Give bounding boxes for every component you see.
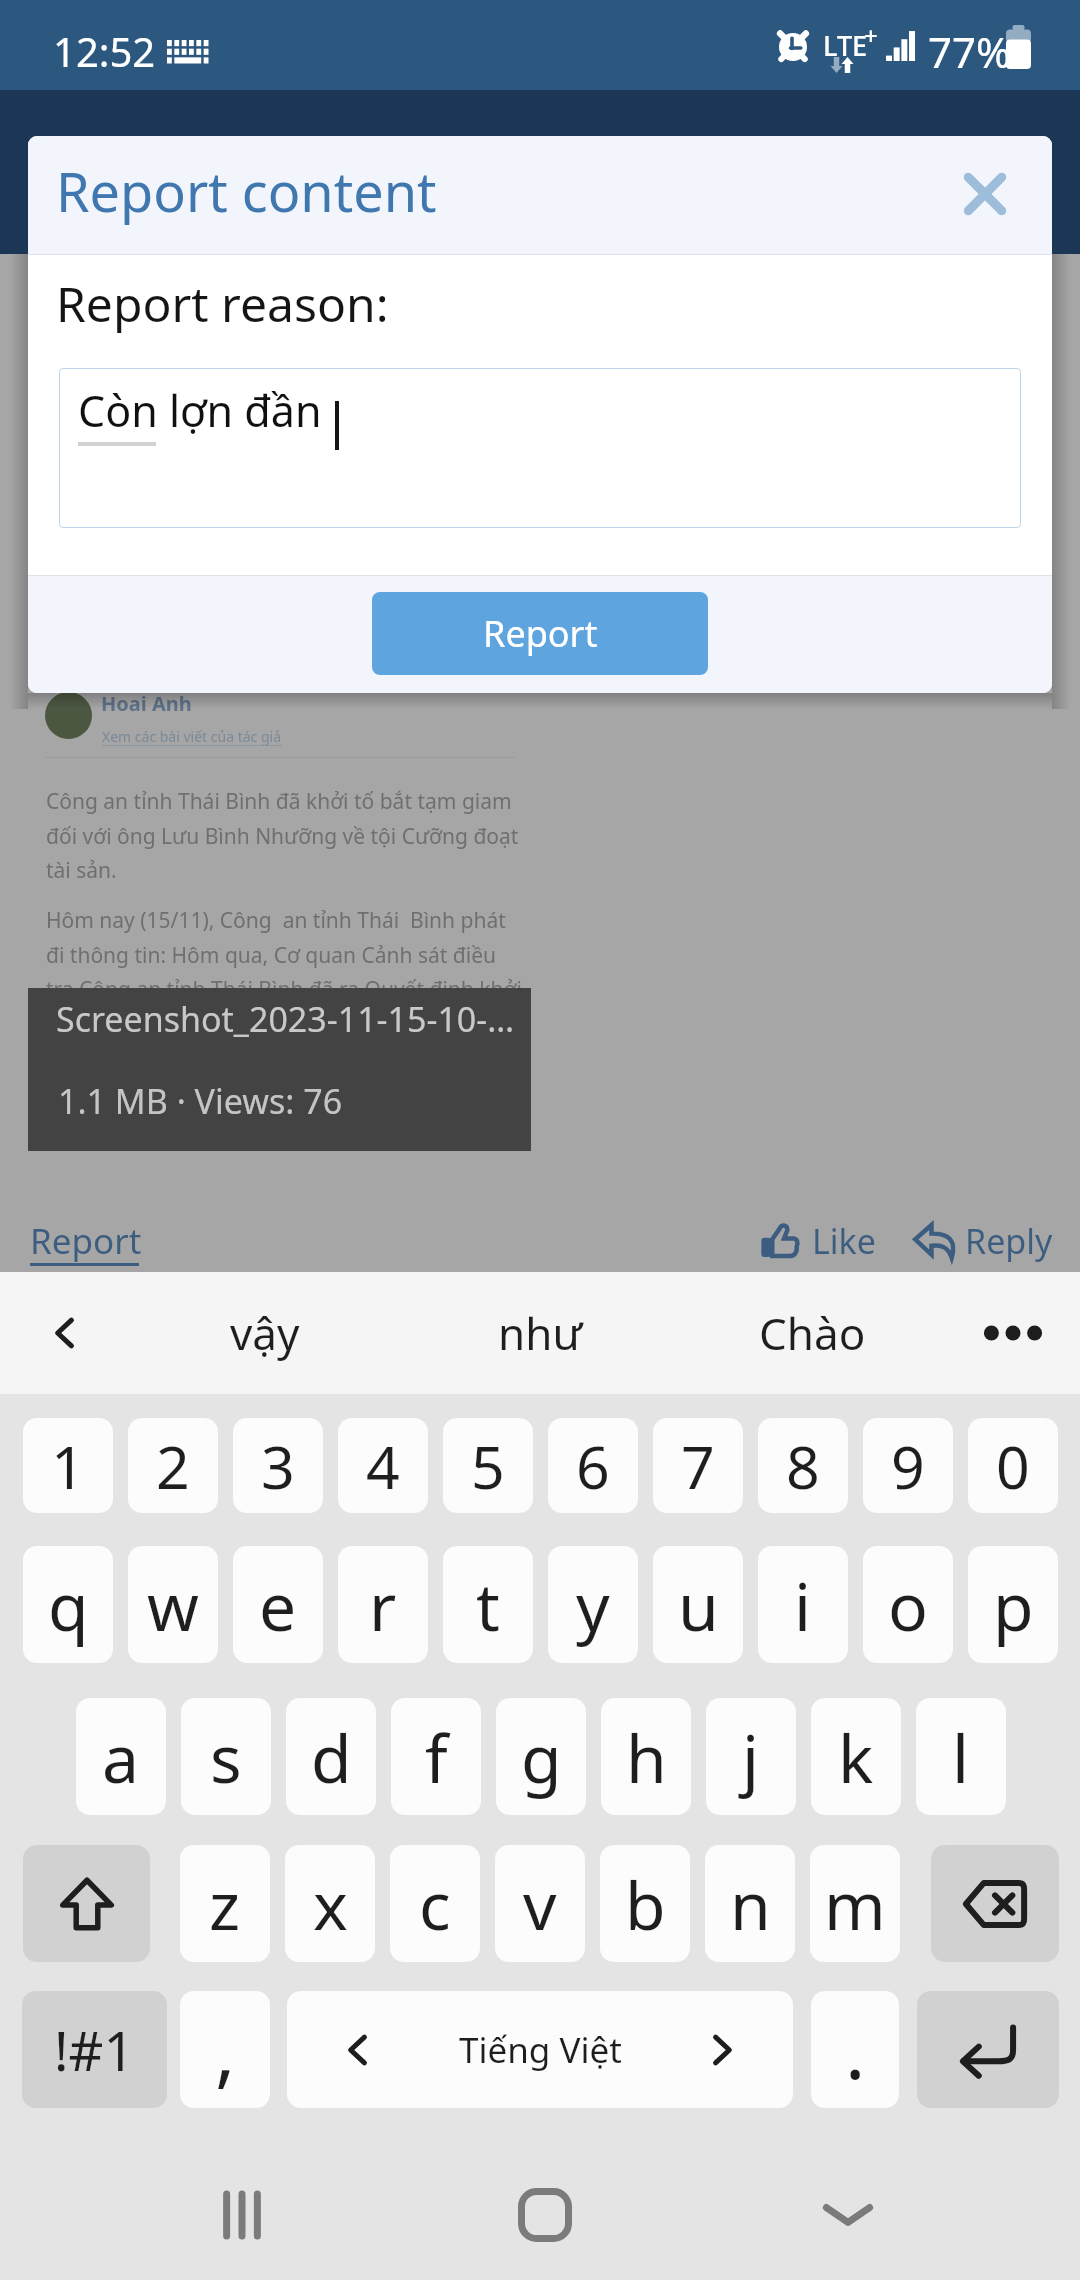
staticText: Hoai Anh <box>101 690 192 717</box>
button[interactable]: 8 <box>758 1418 848 1513</box>
staticText: l <box>952 1712 970 1802</box>
button[interactable]: Hide keyboard <box>728 2150 968 2280</box>
button[interactable]: n <box>705 1845 795 1962</box>
staticText: 12:52 <box>53 24 156 78</box>
button[interactable]: 0 <box>968 1418 1058 1513</box>
staticText: 0 <box>996 1426 1030 1506</box>
button[interactable]: Report <box>30 1217 142 1268</box>
staticText: o <box>888 1560 928 1650</box>
button[interactable]: q <box>23 1546 113 1663</box>
button[interactable]: x <box>285 1845 375 1962</box>
staticText: u <box>678 1560 719 1650</box>
staticText: Reply <box>965 1218 1053 1264</box>
staticText: m <box>824 1859 886 1949</box>
button[interactable]: a <box>76 1698 166 1815</box>
staticText: g <box>521 1712 562 1802</box>
button[interactable]: p <box>968 1546 1058 1663</box>
button[interactable]: Backspace <box>931 1845 1059 1962</box>
button[interactable]: như <box>430 1272 650 1394</box>
staticText: 1 <box>51 1426 85 1506</box>
button[interactable]: 5 <box>443 1418 533 1513</box>
button[interactable]: l <box>916 1698 1006 1815</box>
button[interactable]: e <box>233 1546 323 1663</box>
staticText: Report content <box>56 154 437 228</box>
button[interactable]: 1 <box>23 1418 113 1513</box>
staticText: w <box>147 1560 199 1650</box>
button[interactable]: 7 <box>653 1418 743 1513</box>
staticText: Hôm nay (15/11), Công an tỉnh Thái Bình … <box>46 906 528 1071</box>
button[interactable]: Reply <box>913 1218 1053 1264</box>
staticText: Report reason: <box>56 271 389 336</box>
staticText: h <box>626 1712 667 1802</box>
button[interactable]: y <box>548 1546 638 1663</box>
button[interactable]: Close dialog <box>950 159 1020 229</box>
staticText: e <box>259 1560 297 1650</box>
staticText: !#1 <box>54 2013 135 2087</box>
staticText: 1.1 MB · Views: 76 <box>58 1078 343 1124</box>
staticText: d <box>311 1712 352 1802</box>
button[interactable]: s <box>181 1698 271 1815</box>
button[interactable]: i <box>758 1546 848 1663</box>
staticText: vậy <box>230 1303 300 1363</box>
button[interactable]: z <box>180 1845 270 1962</box>
button[interactable]: Screenshot_2023-11-15-10-… <box>28 988 531 1151</box>
staticText: c <box>419 1859 451 1949</box>
button[interactable]: Like <box>758 1218 876 1264</box>
button[interactable]: vậy <box>155 1272 375 1394</box>
staticText: s <box>210 1712 242 1802</box>
button[interactable]: 2 <box>128 1418 218 1513</box>
staticText: a <box>102 1712 140 1802</box>
button[interactable]: 3 <box>233 1418 323 1513</box>
button[interactable]: b <box>600 1845 690 1962</box>
staticText: Công an tỉnh Thái Bình đã khởi tố bắt tạ… <box>46 787 519 884</box>
button[interactable]: r <box>338 1546 428 1663</box>
staticText: Report <box>483 609 598 658</box>
button[interactable]: Recent apps <box>122 2150 362 2280</box>
button[interactable]: , <box>180 1991 270 2108</box>
button[interactable]: h <box>601 1698 691 1815</box>
button[interactable]: More suggestions <box>978 1298 1048 1368</box>
button[interactable]: g <box>496 1698 586 1815</box>
button[interactable]: f <box>391 1698 481 1815</box>
staticText: k <box>838 1712 874 1802</box>
button[interactable]: w <box>128 1546 218 1663</box>
button[interactable]: v <box>495 1845 585 1962</box>
button[interactable]: c <box>390 1845 480 1962</box>
button[interactable]: t <box>443 1546 533 1663</box>
staticText: 77% <box>928 23 1011 80</box>
staticText: Tiếng Việt <box>459 2026 622 2074</box>
staticText: t <box>476 1560 500 1650</box>
button[interactable]: Còn lợn đần <box>59 368 1021 528</box>
staticText: p <box>993 1560 1034 1650</box>
button[interactable]: Shift <box>23 1845 150 1962</box>
staticText: r <box>369 1560 397 1650</box>
button[interactable]: j <box>706 1698 796 1815</box>
button[interactable]: !#1 <box>22 1991 167 2108</box>
button[interactable]: k <box>811 1698 901 1815</box>
staticText: 6 <box>576 1426 610 1506</box>
button[interactable]: 9 <box>863 1418 953 1513</box>
button[interactable]: Chào <box>702 1272 922 1394</box>
button[interactable]: Previous suggestions <box>30 1298 100 1368</box>
staticText: Còn lợn đần <box>78 381 322 440</box>
staticText: 2 <box>156 1426 190 1506</box>
button[interactable]: 6 <box>548 1418 638 1513</box>
button[interactable]: Home <box>425 2150 665 2280</box>
button[interactable]: Report <box>372 592 708 675</box>
staticText: 8 <box>786 1426 820 1506</box>
button[interactable]: 4 <box>338 1418 428 1513</box>
button[interactable]: o <box>863 1546 953 1663</box>
staticText: như <box>498 1303 583 1363</box>
staticText: . <box>845 1998 866 2102</box>
button[interactable]: Tiếng Việt <box>287 1991 793 2108</box>
button[interactable]: . <box>811 1991 899 2108</box>
button[interactable]: u <box>653 1546 743 1663</box>
staticText: 3 <box>261 1426 295 1506</box>
staticText: j <box>742 1712 760 1802</box>
staticText: Screenshot_2023-11-15-10-… <box>56 996 515 1042</box>
button[interactable]: d <box>286 1698 376 1815</box>
button[interactable]: m <box>810 1845 900 1962</box>
staticText: y <box>576 1560 610 1650</box>
staticText: i <box>794 1560 812 1650</box>
button[interactable]: Enter <box>917 1991 1059 2108</box>
